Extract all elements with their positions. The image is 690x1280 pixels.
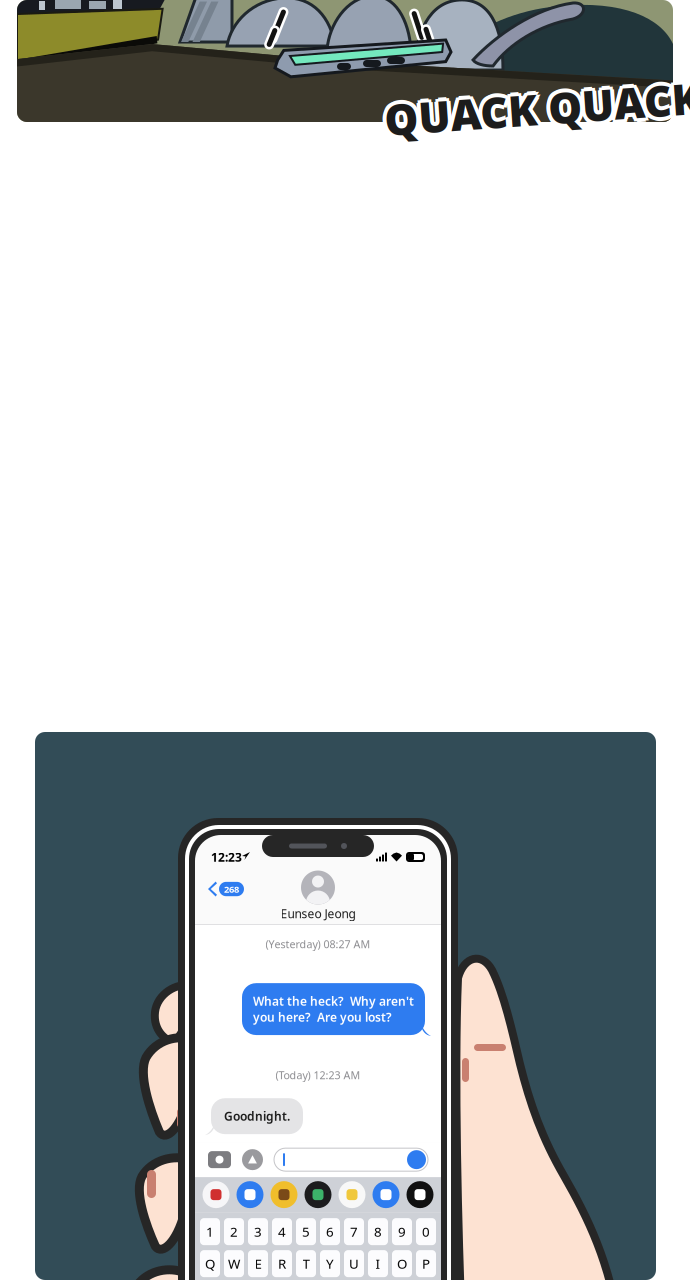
staticText: QUACK QUACK [380,80,690,137]
staticText: 8 [374,1223,382,1240]
staticText: W [228,1255,240,1272]
staticText: 1 [206,1223,214,1240]
staticText: O [397,1255,407,1272]
staticText: (Yesterday) 08:27 AM [265,937,370,951]
staticText: 3 [254,1223,262,1240]
staticText: QUACK QUACK [381,77,690,134]
staticText: QUACK QUACK [384,76,690,133]
staticText: P [422,1255,430,1272]
staticText: Goodnight. [224,1108,290,1124]
staticText: 0 [422,1223,430,1240]
staticText: 6 [326,1223,334,1240]
staticText: QUACK QUACK [387,77,690,134]
staticText: 5 [302,1223,310,1240]
staticText: 268 [224,883,239,895]
staticText: (Today) 12:23 AM [275,1068,360,1082]
button[interactable]: Camera [208,1151,231,1168]
staticText: 2 [230,1223,238,1240]
staticText: QUACK QUACK [384,80,690,137]
staticText: What the heck? Why aren't you here? Are … [253,993,414,1025]
staticText: Y [326,1255,334,1272]
staticText: R [278,1255,286,1272]
button[interactable]: App Store [242,1149,263,1170]
staticText: 12:23 [211,849,242,865]
staticText: T [302,1255,309,1272]
staticText: E [254,1255,261,1272]
button[interactable]: 268 [208,881,244,896]
staticText: 9 [398,1223,406,1240]
staticText: Q [205,1255,215,1272]
staticText: Eunseo Jeong [280,905,355,921]
staticText: QUACK QUACK [381,83,690,139]
staticText: 4 [278,1223,286,1240]
staticText: U [349,1255,359,1272]
staticText: I [375,1255,380,1272]
staticText: QUACK QUACK [388,80,690,137]
staticText: QUACK QUACK [384,84,690,141]
staticText: QUACK QUACK [387,83,690,139]
staticText: 7 [350,1223,358,1240]
